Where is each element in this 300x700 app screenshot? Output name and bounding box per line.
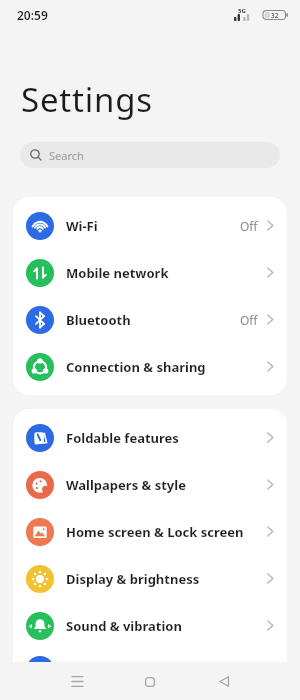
button[interactable]: Sound & vibration — [13, 602, 287, 649]
button[interactable]: Mobile network — [13, 249, 287, 296]
staticText: 5G — [238, 7, 246, 15]
staticText: Display & brightness — [66, 570, 200, 588]
button[interactable]: Bluetooth — [13, 296, 287, 343]
staticText: Mobile network — [66, 264, 169, 282]
staticText: Off — [240, 218, 258, 234]
button[interactable] — [62, 671, 93, 692]
button[interactable] — [135, 671, 165, 692]
button[interactable] — [26, 656, 54, 662]
button[interactable]: Display & brightness — [13, 555, 287, 602]
staticText: Settings — [21, 77, 153, 122]
staticText: Off — [240, 312, 258, 328]
staticText: Wallpapers & style — [66, 476, 186, 494]
button[interactable]: Connection & sharing — [13, 343, 287, 390]
staticText: 32 — [271, 11, 279, 20]
staticText: Home screen & Lock screen — [66, 523, 244, 541]
button[interactable]: Home screen & Lock screen — [13, 508, 287, 555]
staticText: 20:59 — [17, 7, 48, 23]
button[interactable]: Foldable features — [13, 414, 287, 461]
button[interactable]: Wallpapers & style — [13, 461, 287, 508]
button[interactable]: Search — [20, 142, 280, 168]
staticText: Foldable features — [66, 429, 179, 447]
staticText: Connection & sharing — [66, 358, 206, 376]
staticText: Wi-Fi — [66, 217, 98, 235]
staticText: Sound & vibration — [66, 617, 182, 635]
button[interactable] — [209, 671, 239, 692]
staticText: Bluetooth — [66, 311, 131, 329]
button[interactable]: Wi-Fi — [13, 202, 287, 249]
staticText: Search — [49, 148, 84, 163]
